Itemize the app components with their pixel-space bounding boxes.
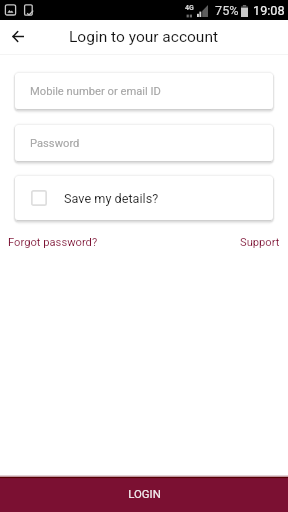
staticText: Password (30, 137, 80, 150)
staticText: Save my details? (64, 191, 159, 206)
button[interactable]: LOGIN (0, 477, 288, 512)
staticText: Support (240, 236, 280, 249)
staticText: 4G (185, 4, 194, 12)
button[interactable]: Password (15, 125, 273, 161)
button[interactable]: Support (240, 236, 280, 249)
staticText: Login to your account (69, 28, 219, 46)
staticText: Mobile number or email ID (30, 85, 161, 98)
staticText: 75% (215, 3, 239, 18)
button[interactable]: Mobile number or email ID (15, 73, 273, 109)
staticText: 19:08 (253, 3, 285, 18)
button[interactable]: Back (5, 24, 31, 50)
button[interactable]: Forgot password? (8, 236, 98, 249)
staticText: LOGIN (128, 487, 161, 500)
button[interactable]: Save my details? (15, 176, 273, 220)
staticText: Forgot password? (8, 236, 98, 249)
